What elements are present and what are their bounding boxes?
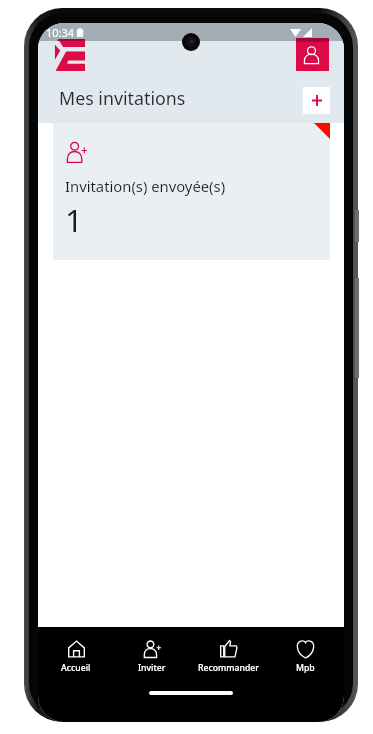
button[interactable]: Profil <box>296 38 329 71</box>
staticText: Invitation(s) envoyée(s) <box>65 176 226 196</box>
button[interactable]: Mpb <box>267 637 344 677</box>
button[interactable]: Ajouter une invitation <box>303 87 330 114</box>
button[interactable]: Recommander <box>190 637 267 677</box>
button[interactable]: Invitation(s) envoyée(s) <box>53 123 330 260</box>
staticText: Mes invitations <box>59 86 186 110</box>
staticText: Accueil <box>61 662 91 674</box>
staticText: 1 <box>65 199 83 241</box>
staticText: 10:34 <box>46 25 75 40</box>
button[interactable]: Accueil <box>38 637 114 677</box>
staticText: Inviter <box>138 662 166 674</box>
staticText: Mpb <box>296 662 315 674</box>
button[interactable]: Inviter <box>114 637 190 677</box>
staticText: Recommander <box>198 662 259 674</box>
